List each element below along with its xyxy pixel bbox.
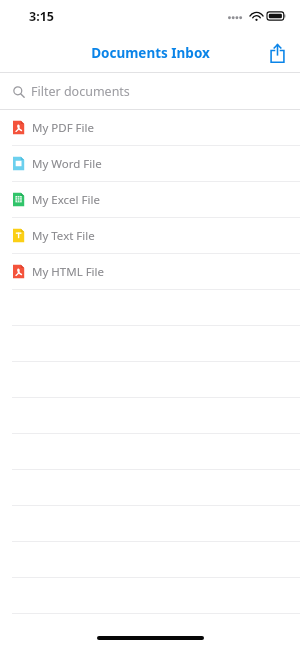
staticText: My Word File	[32, 156, 102, 172]
button[interactable]: My Excel File	[0, 182, 300, 217]
button[interactable]: My Text File	[0, 218, 300, 253]
button[interactable]: My Word File	[0, 146, 300, 181]
staticText: My Text File	[32, 228, 95, 244]
staticText: My HTML File	[32, 264, 105, 280]
staticText: My PDF File	[32, 120, 94, 136]
staticText: 3:15	[29, 8, 54, 25]
button[interactable]: Share	[263, 39, 291, 67]
staticText: Filter documents	[31, 83, 130, 100]
button[interactable]: Documents Inbox	[91, 44, 210, 62]
button[interactable]: My HTML File	[0, 254, 300, 289]
button[interactable]: My PDF File	[0, 110, 300, 145]
button[interactable]: Filter documents	[0, 73, 300, 109]
staticText: My Excel File	[32, 192, 100, 208]
